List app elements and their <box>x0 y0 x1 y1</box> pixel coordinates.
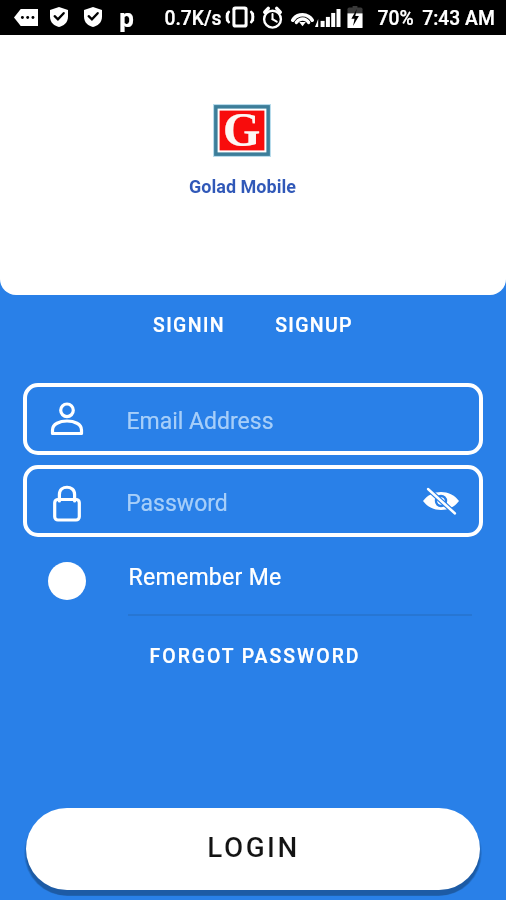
staticText: Golad Mobile <box>189 176 296 197</box>
staticText: LOGIN <box>207 831 300 864</box>
staticText: Email Address <box>126 408 274 435</box>
button[interactable]: FORGOT PASSWORD <box>131 637 375 676</box>
staticText: FORGOT PASSWORD <box>149 645 361 668</box>
button[interactable]: Email Address <box>23 383 483 455</box>
staticText: SIGNUP <box>275 314 353 337</box>
button[interactable]: Show password <box>422 485 460 517</box>
button[interactable]: SIGNUP <box>261 307 367 344</box>
staticText: 7:43 AM <box>422 7 495 30</box>
staticText: G <box>223 103 261 156</box>
staticText: Password <box>126 490 228 517</box>
staticText: Remember Me <box>128 564 282 591</box>
button[interactable]: LOGIN <box>26 808 480 890</box>
staticText: SIGNIN <box>153 314 225 337</box>
staticText: p <box>119 3 134 33</box>
button[interactable]: SIGNIN <box>139 307 239 344</box>
button[interactable]: Remember me <box>40 555 472 616</box>
other: Remember me <box>48 562 86 600</box>
staticText: 70% <box>377 7 414 30</box>
staticText: 0.7K/s <box>164 7 222 30</box>
button[interactable]: Password <box>23 465 483 537</box>
